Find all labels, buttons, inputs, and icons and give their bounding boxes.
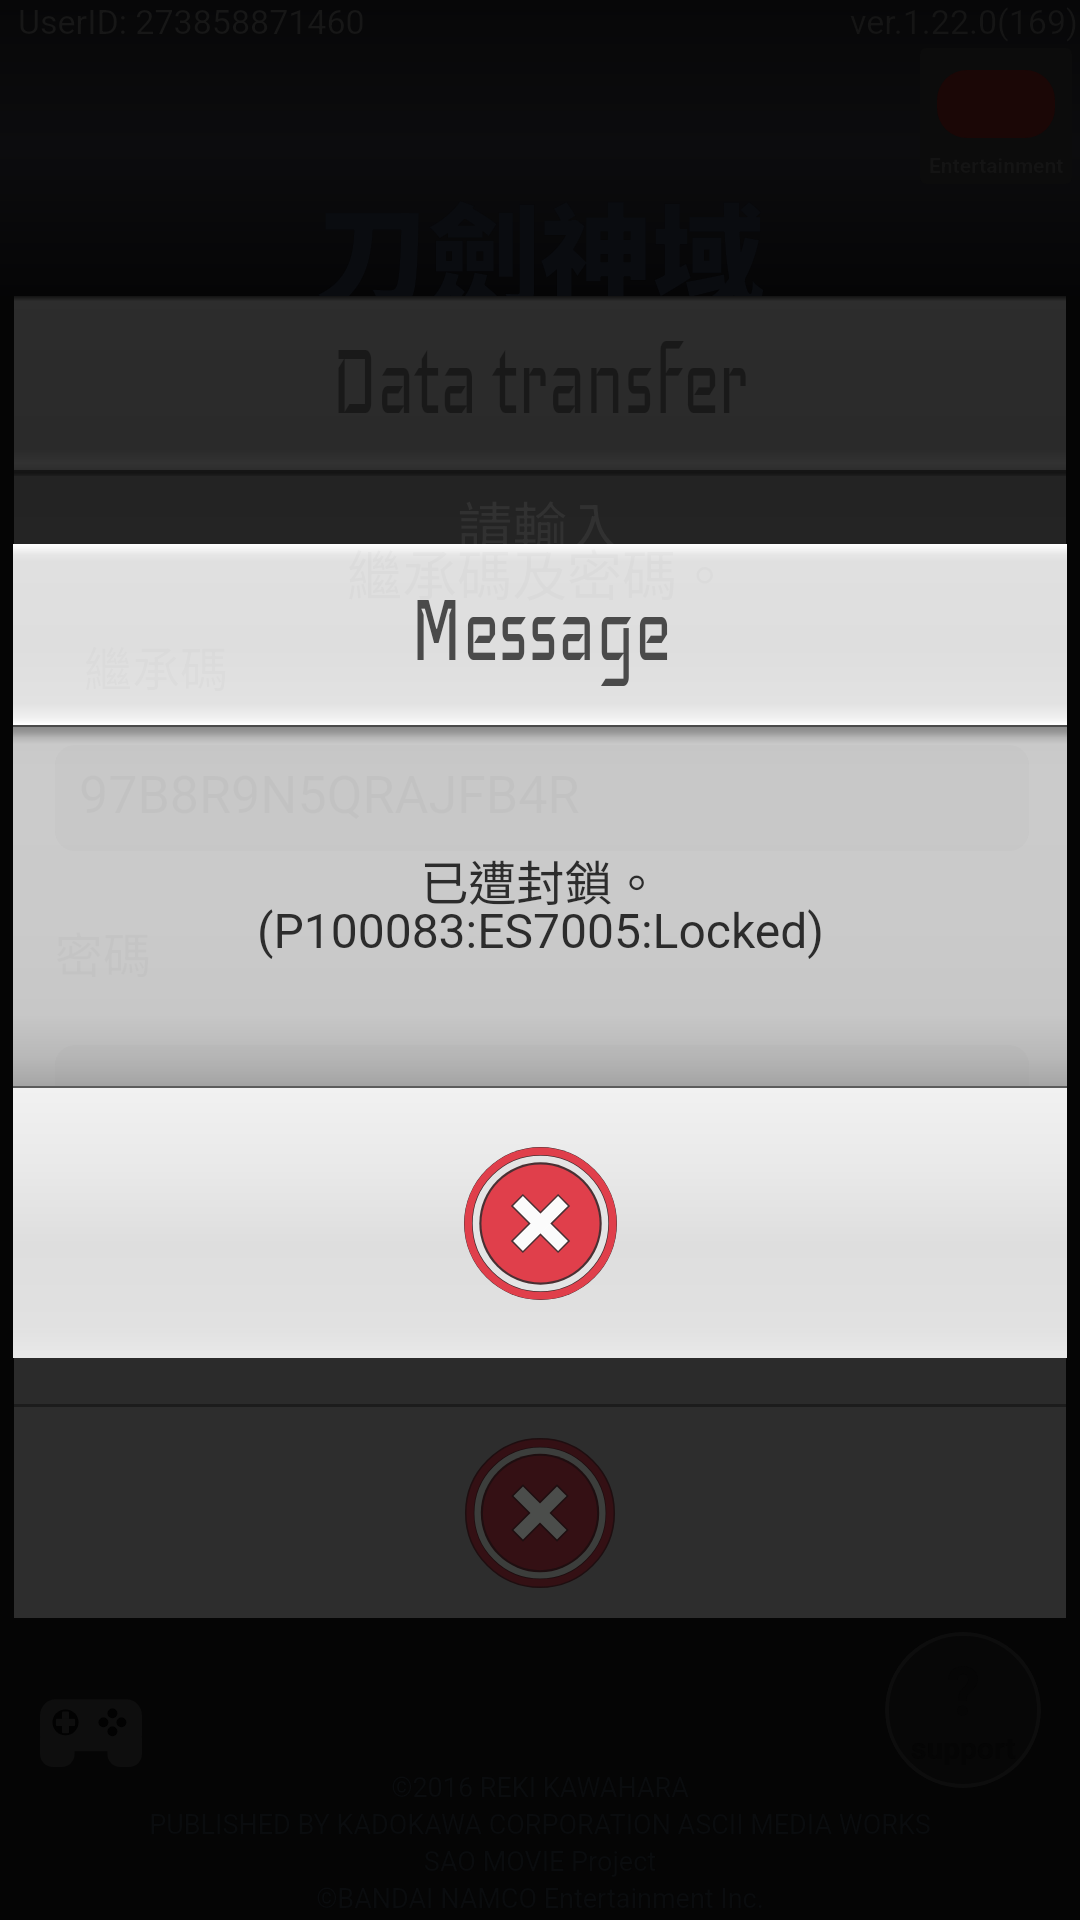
- staticText: 已遭封鎖。: [420, 845, 661, 915]
- staticText: Message: [411, 567, 670, 687]
- button[interactable]: Close: [464, 1147, 617, 1300]
- staticText: 36R32F54D: [93, 990, 364, 1051]
- staticText: 刀劍神域: [316, 168, 764, 330]
- staticText: 繼承碼: [69, 668, 214, 738]
- staticText: Entertainment: [929, 154, 1064, 179]
- staticText: ver.1.22.0(169): [850, 2, 1078, 42]
- staticText: UserID: 273858871460: [18, 2, 365, 42]
- staticText: (P100083:ES7005:Locked): [257, 903, 824, 959]
- staticText: 繼承碼及密碼。: [347, 532, 733, 612]
- staticText: 請輸入 繼承碼及密碼。: [347, 484, 733, 636]
- staticText: Data transfer: [331, 317, 749, 441]
